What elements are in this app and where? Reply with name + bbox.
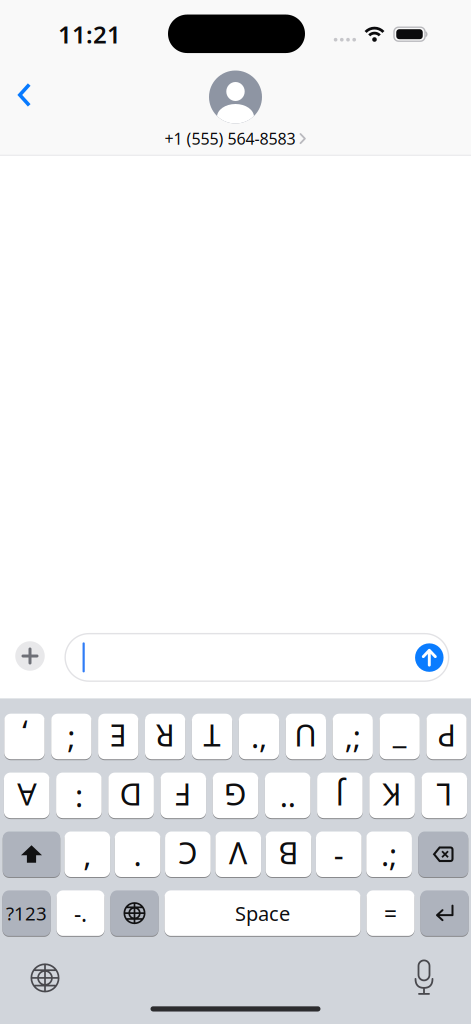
button[interactable]: = xyxy=(366,889,414,937)
staticText: : xyxy=(75,775,83,816)
staticText: ,; xyxy=(345,716,361,757)
button[interactable]: Switch keyboard xyxy=(110,889,158,937)
staticText: , xyxy=(20,716,28,757)
staticText: . xyxy=(134,834,142,875)
staticText: .. xyxy=(280,775,296,816)
staticText: ., xyxy=(251,716,267,757)
button[interactable]: - xyxy=(316,830,362,878)
staticText: , xyxy=(83,834,91,875)
button[interactable]: Contact xyxy=(209,70,262,123)
staticText: +1 (555) 564-8583 xyxy=(164,128,295,149)
button[interactable]: P xyxy=(426,713,467,760)
staticText: 11:21 xyxy=(58,18,121,50)
button[interactable]: ., xyxy=(239,713,279,760)
button[interactable]: C xyxy=(165,830,211,878)
button[interactable]: B xyxy=(266,830,311,878)
staticText: D xyxy=(120,775,142,816)
staticText: C xyxy=(178,834,197,875)
staticText: .; xyxy=(381,834,397,875)
button[interactable]: . xyxy=(115,830,160,878)
staticText: Space xyxy=(235,900,290,926)
button[interactable]: Dictate xyxy=(414,959,434,995)
button[interactable]: L xyxy=(421,772,467,819)
button[interactable]: .; xyxy=(366,830,412,878)
staticText: F xyxy=(175,775,191,816)
staticText: B xyxy=(278,834,298,875)
button[interactable]: Switch keyboard xyxy=(30,963,59,992)
button[interactable]: +1 (555) 564-8583 xyxy=(164,128,306,149)
button[interactable]: Back xyxy=(6,75,42,115)
button[interactable]: _ xyxy=(379,713,420,760)
button[interactable]: Return xyxy=(420,889,468,937)
button[interactable]: .. xyxy=(265,772,310,819)
staticText: -. xyxy=(74,898,87,928)
staticText: - xyxy=(334,834,344,875)
staticText: T xyxy=(203,716,220,757)
button[interactable]: V xyxy=(215,830,261,878)
button[interactable]: , xyxy=(4,713,45,760)
button[interactable]: ?123 xyxy=(2,889,50,937)
staticText: G xyxy=(224,775,246,816)
button[interactable]: Send xyxy=(415,643,444,672)
button[interactable]: , xyxy=(64,830,110,878)
staticText: A xyxy=(17,775,37,816)
staticText: ; xyxy=(67,716,75,757)
button[interactable]: J xyxy=(317,772,363,819)
button[interactable]: D xyxy=(108,772,154,819)
staticText: R xyxy=(156,716,175,757)
button[interactable]: E xyxy=(98,713,138,760)
button[interactable]: G xyxy=(213,772,258,819)
staticText: P xyxy=(437,716,456,757)
button[interactable]: More options xyxy=(15,641,45,671)
button[interactable]: U xyxy=(286,713,326,760)
staticText: L xyxy=(436,775,452,816)
staticText: J xyxy=(336,775,344,816)
staticText: = xyxy=(384,898,397,928)
button[interactable]: F xyxy=(160,772,206,819)
button[interactable]: Shift xyxy=(3,830,60,878)
staticText: U xyxy=(295,716,317,757)
button[interactable]: R xyxy=(145,713,185,760)
button[interactable]: K xyxy=(369,772,415,819)
staticText: K xyxy=(383,775,402,816)
button[interactable]: Space xyxy=(164,889,360,937)
staticText: _ xyxy=(393,711,407,752)
button[interactable]: : xyxy=(56,772,102,819)
button[interactable]: T xyxy=(192,713,232,760)
button[interactable]: A xyxy=(4,772,49,819)
button[interactable]: -. xyxy=(56,889,104,937)
staticText: ?123 xyxy=(6,901,47,926)
button[interactable]: Delete xyxy=(418,830,468,878)
button[interactable]: ,; xyxy=(333,713,373,760)
staticText: V xyxy=(229,834,247,875)
staticText: E xyxy=(110,716,127,757)
button[interactable]: ; xyxy=(51,713,91,760)
